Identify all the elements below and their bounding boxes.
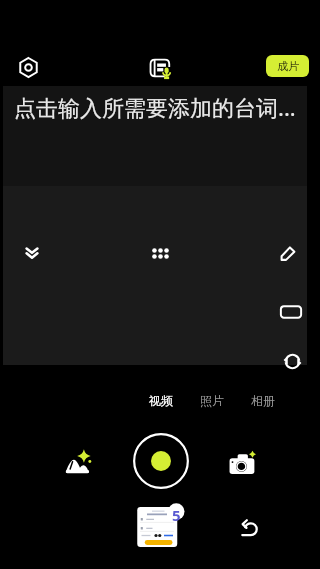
button[interactable]: 成片 xyxy=(266,55,309,77)
button[interactable]: Take photo xyxy=(227,449,257,479)
button[interactable]: Switch camera xyxy=(278,347,306,375)
button[interactable]: Gallery xyxy=(134,504,184,550)
button[interactable]: Teleprompter xyxy=(146,54,174,82)
staticText: 5 xyxy=(172,505,181,525)
button[interactable]: Effects xyxy=(146,239,174,267)
staticText: 照片 xyxy=(200,393,224,408)
staticText: 点击输入所需要添加的台词... xyxy=(14,92,296,122)
button[interactable]: Undo xyxy=(236,514,262,540)
button[interactable]: 照片 xyxy=(193,390,231,410)
button[interactable]: Aspect ratio xyxy=(277,298,305,326)
button[interactable]: Edit xyxy=(274,239,302,267)
button[interactable]: 视频 xyxy=(142,390,180,410)
button[interactable]: 点击输入所需要添加的台词... xyxy=(3,86,307,186)
staticText: 成片 xyxy=(277,59,299,73)
staticText: 视频 xyxy=(149,393,173,408)
button[interactable]: Settings xyxy=(14,53,42,81)
button[interactable]: 相册 xyxy=(244,390,282,410)
button[interactable]: Record xyxy=(131,431,191,491)
button[interactable]: Collapse xyxy=(18,239,46,267)
button[interactable]: Beauty xyxy=(62,446,94,478)
staticText: 相册 xyxy=(251,393,275,408)
